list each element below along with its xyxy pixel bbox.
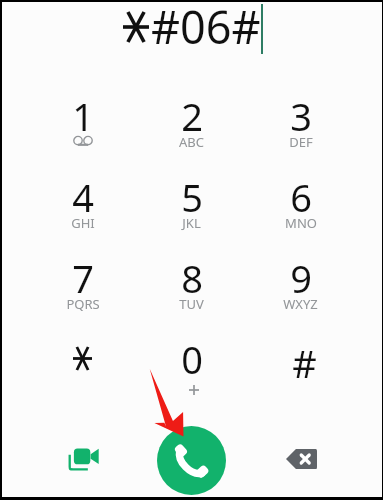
- button[interactable]: Backspace: [281, 439, 321, 479]
- button[interactable]: 7: [28, 264, 137, 345]
- staticText: 8: [181, 252, 203, 304]
- button[interactable]: Call: [157, 426, 226, 495]
- button[interactable]: 2: [137, 102, 246, 183]
- staticText: 4: [72, 171, 94, 223]
- staticText: 3: [290, 90, 312, 142]
- staticText: 1: [72, 90, 94, 142]
- staticText: DEF: [289, 133, 313, 151]
- staticText: 9: [290, 252, 312, 304]
- button[interactable]: 1: [28, 102, 137, 183]
- staticText: 0: [181, 333, 203, 385]
- button[interactable]: 4: [28, 183, 137, 264]
- staticText: MNO: [285, 214, 317, 232]
- button[interactable]: 5: [137, 183, 246, 264]
- staticText: 5: [181, 171, 203, 223]
- staticText: TUV: [179, 295, 204, 313]
- staticText: PQRS: [66, 295, 100, 313]
- button[interactable]: Video call: [63, 438, 103, 478]
- staticText: #: [292, 337, 317, 389]
- button[interactable]: 0: [137, 345, 246, 426]
- button[interactable]: [28, 345, 137, 426]
- button[interactable]: #: [246, 345, 355, 426]
- button[interactable]: 6: [246, 183, 355, 264]
- button[interactable]: 3: [246, 102, 355, 183]
- staticText: JKL: [182, 214, 201, 232]
- button[interactable]: 8: [137, 264, 246, 345]
- staticText: ABC: [179, 133, 204, 151]
- button[interactable]: 9: [246, 264, 355, 345]
- staticText: #06#: [151, 0, 261, 56]
- staticText: 2: [181, 90, 203, 142]
- staticText: GHI: [71, 214, 95, 232]
- staticText: 6: [290, 171, 312, 223]
- staticText: WXYZ: [283, 295, 318, 313]
- staticText: 7: [72, 252, 94, 304]
